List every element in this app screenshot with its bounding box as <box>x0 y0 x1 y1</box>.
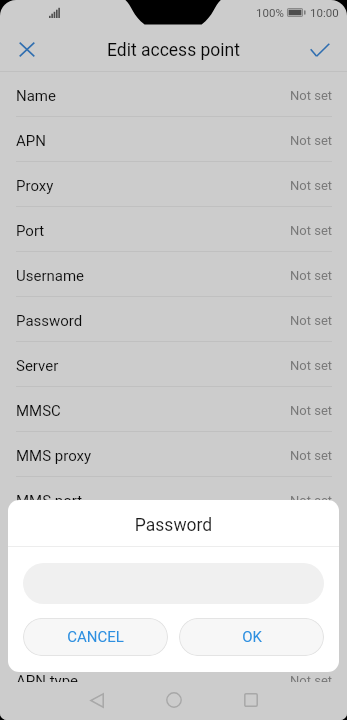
staticText: Not set <box>290 358 333 373</box>
staticText: MMS port <box>16 492 83 510</box>
button[interactable]: Save <box>296 26 344 73</box>
staticText: Not set <box>290 313 333 328</box>
button[interactable]: MCC <box>0 522 347 567</box>
button[interactable]: OK <box>179 618 324 656</box>
staticText: Not set <box>290 178 333 193</box>
staticText: Not set <box>290 133 333 148</box>
staticText: OK <box>242 628 262 646</box>
staticText: Not set <box>290 628 333 643</box>
button[interactable]: MMS port <box>0 477 347 522</box>
staticText: Password <box>8 515 339 536</box>
staticText: 100% <box>256 6 284 19</box>
staticText: Port <box>16 222 45 240</box>
button[interactable]: CANCEL <box>23 618 168 656</box>
staticText: MMS proxy <box>16 447 92 465</box>
button[interactable]: MMSC <box>0 387 347 432</box>
staticText: CANCEL <box>67 628 124 646</box>
staticText: APN <box>16 132 46 150</box>
staticText: Not set <box>290 268 333 283</box>
button[interactable]: Name <box>0 72 347 117</box>
button[interactable]: MMS proxy <box>0 432 347 477</box>
button[interactable]: Server <box>0 342 347 387</box>
button[interactable]: Cancel <box>3 26 51 73</box>
staticText: Edit access point <box>107 40 240 61</box>
button[interactable]: Recent apps <box>227 681 275 719</box>
staticText: Password <box>16 312 83 330</box>
button[interactable]: Password <box>0 297 347 342</box>
staticText: MNC <box>16 582 50 600</box>
staticText: MMSC <box>16 402 61 420</box>
staticText: Server <box>16 357 59 375</box>
staticText: Not set <box>290 88 333 103</box>
button[interactable]: Home <box>150 681 198 719</box>
button[interactable]: Authentication type <box>0 612 347 657</box>
staticText: Not set <box>290 673 333 688</box>
staticText: Username <box>16 267 85 285</box>
staticText: Authentication type <box>16 627 146 645</box>
staticText: Not set <box>290 403 333 418</box>
staticText: Not set <box>290 493 333 508</box>
button[interactable]: Proxy <box>0 162 347 207</box>
button[interactable]: Back <box>73 681 121 719</box>
staticText: Not set <box>290 538 333 553</box>
staticText: Not set <box>290 223 333 238</box>
staticText: MCC <box>16 537 49 555</box>
staticText: Proxy <box>16 177 54 195</box>
staticText: Not set <box>290 448 333 463</box>
staticText: 10:00 <box>310 6 339 19</box>
staticText: APN type <box>16 672 79 690</box>
button[interactable]: MNC <box>0 567 347 612</box>
button[interactable]: Port <box>0 207 347 252</box>
staticText: Not set <box>290 583 333 598</box>
staticText: Name <box>16 87 56 105</box>
button[interactable]: APN <box>0 117 347 162</box>
button[interactable]: Username <box>0 252 347 297</box>
button[interactable]: APN type <box>0 657 347 702</box>
